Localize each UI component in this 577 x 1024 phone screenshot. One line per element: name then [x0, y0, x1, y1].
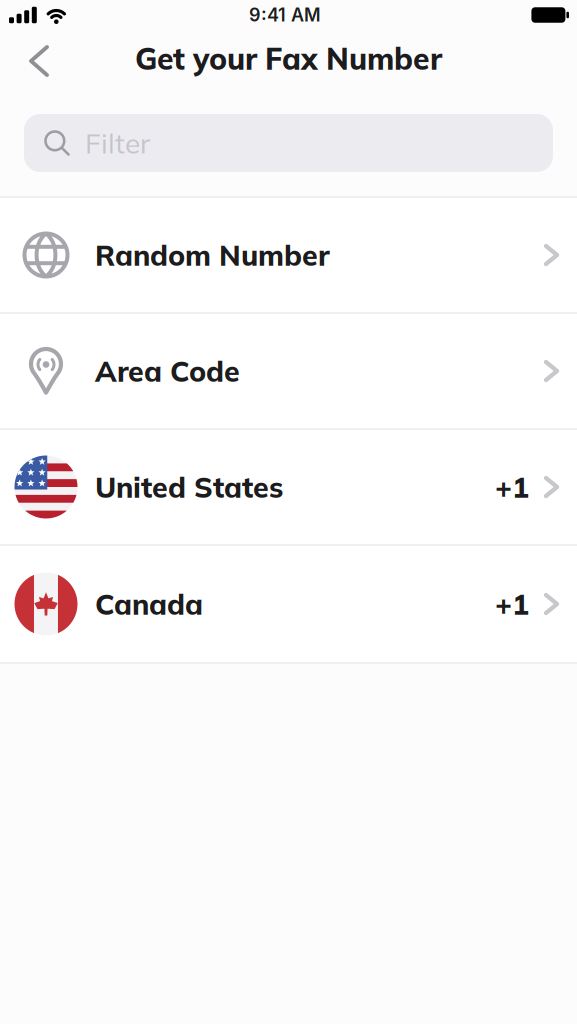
- staticText: Canada: [95, 586, 203, 622]
- staticText: United States: [95, 469, 283, 505]
- staticText: Get your Fax Number: [135, 40, 442, 77]
- staticText: Filter: [85, 125, 150, 160]
- button[interactable]: Filter: [0, 114, 577, 172]
- staticText: +1: [495, 586, 529, 622]
- button[interactable]: Random Number: [0, 198, 577, 312]
- staticText: Random Number: [95, 237, 330, 273]
- button[interactable]: Area Code: [0, 314, 577, 428]
- button[interactable]: United States: [0, 430, 577, 544]
- staticText: +1: [495, 469, 529, 505]
- staticText: Area Code: [95, 353, 240, 389]
- staticText: 9:41 AM: [249, 4, 321, 26]
- button[interactable]: Back: [0, 39, 63, 83]
- button[interactable]: Canada: [0, 546, 577, 662]
